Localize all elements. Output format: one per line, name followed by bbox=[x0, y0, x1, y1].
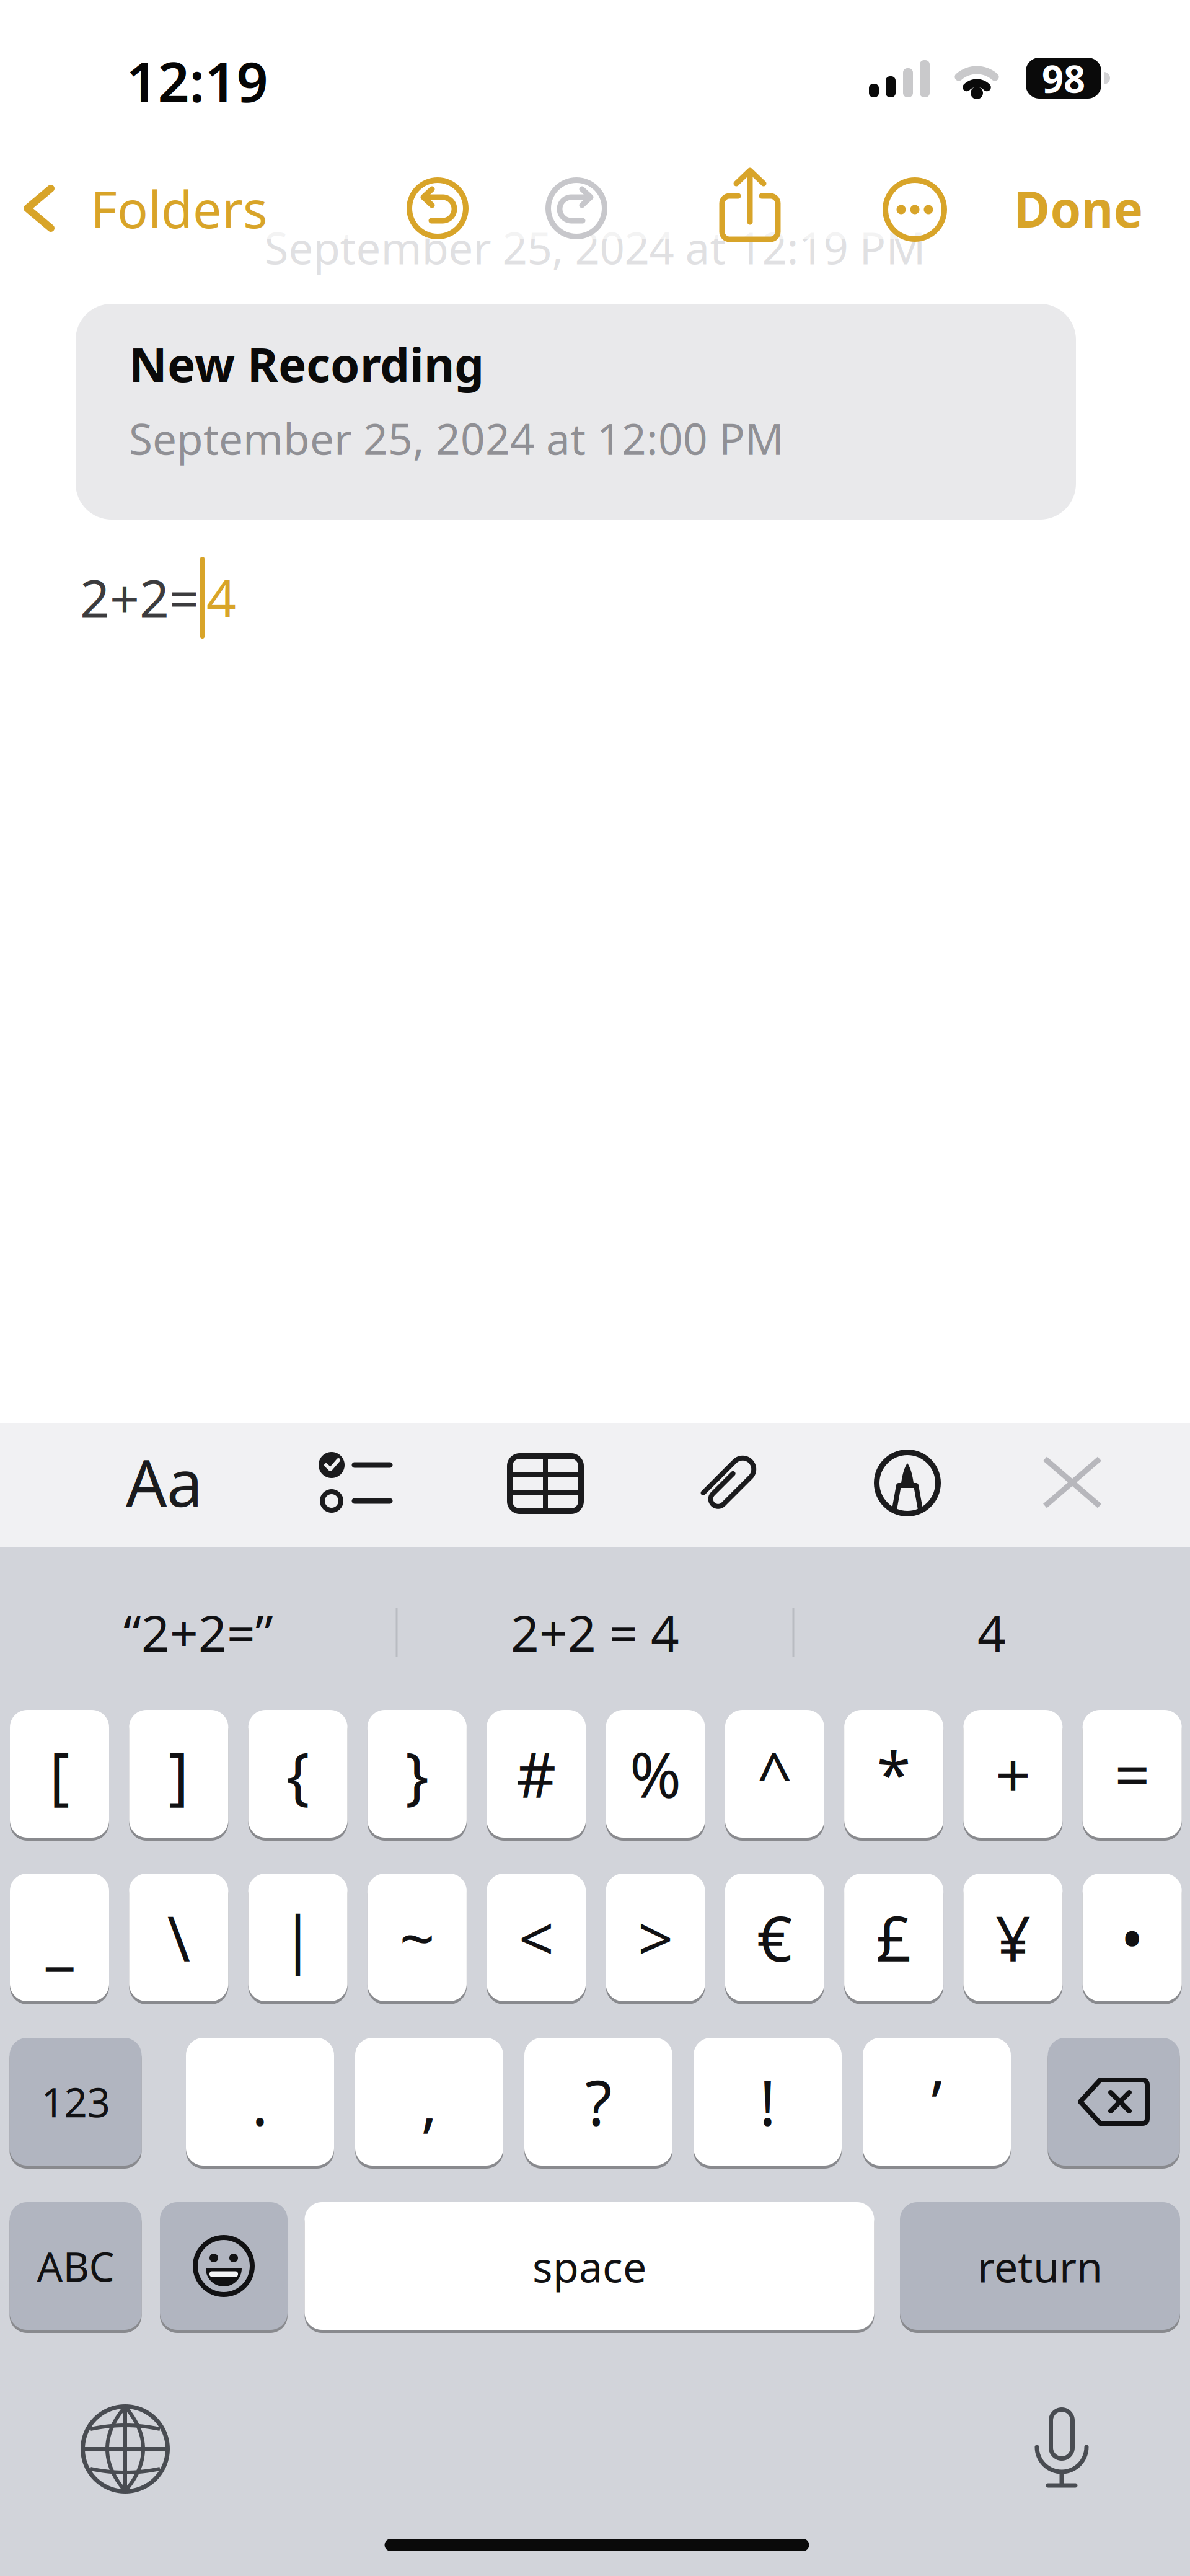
button[interactable]: > bbox=[606, 1872, 705, 2003]
staticText: € bbox=[757, 1896, 792, 1979]
button[interactable]: Emoji bbox=[160, 2200, 288, 2332]
button[interactable]: Dictate bbox=[1029, 2405, 1094, 2488]
button[interactable]: ? bbox=[524, 2036, 672, 2167]
button[interactable]: | bbox=[248, 1872, 347, 2003]
button[interactable]: } bbox=[367, 1708, 467, 1839]
button[interactable]: { bbox=[248, 1708, 347, 1839]
staticText: 2+2 = 4 bbox=[511, 1599, 679, 1665]
staticText: ? bbox=[585, 2061, 612, 2143]
button[interactable]: Format bbox=[126, 1439, 203, 1525]
staticText: } bbox=[405, 1733, 429, 1815]
staticText: September 25, 2024 at 12:19 PM bbox=[264, 218, 926, 276]
staticText: < bbox=[519, 1896, 554, 1979]
button[interactable]: New Recording bbox=[76, 304, 1076, 520]
button[interactable]: \ bbox=[129, 1872, 228, 2003]
staticText: | bbox=[281, 1896, 315, 1979]
staticText: 4 bbox=[977, 1599, 1006, 1665]
staticText: * bbox=[877, 1733, 911, 1815]
button[interactable]: 4 bbox=[977, 1599, 1006, 1665]
staticText: % bbox=[630, 1733, 681, 1815]
staticText: [ bbox=[49, 1733, 70, 1815]
button[interactable]: ] bbox=[129, 1708, 228, 1839]
staticText: 12:19 bbox=[126, 44, 268, 117]
button[interactable]: Markup bbox=[874, 1450, 941, 1516]
staticText: = bbox=[1115, 1733, 1150, 1815]
button[interactable]: [ bbox=[10, 1708, 109, 1839]
staticText: £ bbox=[876, 1896, 911, 1979]
button[interactable]: Undo bbox=[407, 177, 469, 239]
staticText: { bbox=[286, 1733, 310, 1815]
button[interactable]: _ bbox=[10, 1872, 109, 2003]
button[interactable]: • bbox=[1083, 1872, 1182, 2003]
staticText: , bbox=[421, 2061, 438, 2143]
button[interactable]: Share bbox=[716, 166, 784, 246]
button[interactable]: ABC bbox=[10, 2200, 142, 2332]
button[interactable]: Delete bbox=[1048, 2036, 1180, 2167]
button[interactable]: Done bbox=[1014, 175, 1143, 241]
button[interactable]: return bbox=[900, 2200, 1180, 2332]
button[interactable]: Table bbox=[507, 1453, 584, 1514]
button[interactable]: More bbox=[883, 177, 947, 242]
button[interactable]: * bbox=[844, 1708, 943, 1839]
staticText: • bbox=[1120, 1896, 1144, 1979]
staticText: return bbox=[977, 2238, 1103, 2294]
button[interactable]: = bbox=[1083, 1708, 1182, 1839]
staticText: New Recording bbox=[129, 332, 484, 395]
staticText: ¥ bbox=[995, 1896, 1031, 1979]
button[interactable]: Attach bbox=[694, 1445, 765, 1520]
button[interactable]: ’ bbox=[863, 2036, 1011, 2167]
button[interactable]: ^ bbox=[725, 1708, 824, 1839]
staticText: _ bbox=[46, 1896, 73, 1979]
button[interactable]: € bbox=[725, 1872, 824, 2003]
button[interactable]: “2+2=” bbox=[123, 1599, 273, 1665]
staticText: ! bbox=[759, 2061, 776, 2143]
button[interactable]: 123 bbox=[10, 2036, 142, 2167]
button[interactable]: space bbox=[305, 2200, 874, 2332]
button[interactable]: , bbox=[355, 2036, 503, 2167]
staticText: 98 bbox=[1042, 53, 1085, 103]
button[interactable]: < bbox=[487, 1872, 586, 2003]
button[interactable]: ¥ bbox=[963, 1872, 1063, 2003]
staticText: Aa bbox=[126, 1439, 203, 1525]
staticText: ~ bbox=[399, 1896, 435, 1979]
staticText: 123 bbox=[41, 2075, 110, 2129]
staticText: ’ bbox=[931, 2061, 942, 2143]
staticText: Folders bbox=[90, 174, 268, 242]
staticText: ] bbox=[168, 1733, 189, 1815]
staticText: # bbox=[516, 1733, 556, 1815]
button[interactable]: . bbox=[186, 2036, 334, 2167]
staticText: > bbox=[638, 1896, 673, 1979]
button[interactable]: 2+2 = 4 bbox=[511, 1599, 679, 1665]
staticText: “2+2=” bbox=[123, 1599, 273, 1665]
button[interactable]: Back to Folders bbox=[22, 171, 419, 246]
button[interactable]: ! bbox=[694, 2036, 842, 2167]
button[interactable]: % bbox=[606, 1708, 705, 1839]
button[interactable]: Next keyboard bbox=[81, 2404, 170, 2494]
button[interactable]: Checklist bbox=[316, 1456, 390, 1510]
staticText: ^ bbox=[757, 1733, 792, 1815]
staticText: Done bbox=[1014, 175, 1143, 241]
staticText: September 25, 2024 at 12:00 PM bbox=[129, 410, 784, 467]
staticText: 2+2= bbox=[80, 563, 199, 632]
staticText: \ bbox=[167, 1896, 190, 1979]
button[interactable]: Redo bbox=[545, 177, 607, 239]
staticText: + bbox=[995, 1733, 1031, 1815]
staticText: space bbox=[532, 2238, 646, 2294]
button[interactable]: £ bbox=[844, 1872, 943, 2003]
staticText: ABC bbox=[37, 2239, 114, 2293]
staticText: 4 bbox=[206, 563, 236, 632]
button[interactable]: # bbox=[487, 1708, 586, 1839]
staticText: . bbox=[252, 2061, 268, 2143]
button[interactable]: + bbox=[963, 1708, 1063, 1839]
button[interactable]: Dismiss keyboard bbox=[1042, 1456, 1102, 1508]
button[interactable]: ~ bbox=[367, 1872, 467, 2003]
